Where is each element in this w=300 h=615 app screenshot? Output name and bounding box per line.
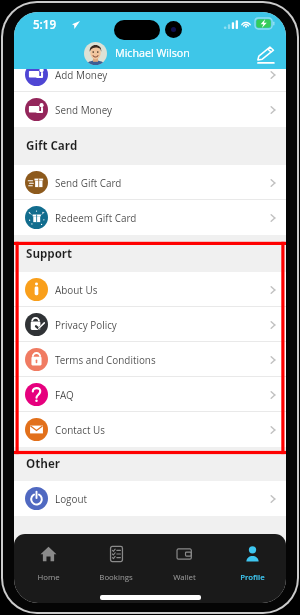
staticText: Send Gift Card [55,176,122,189]
staticText: About Us [55,283,98,296]
staticText: Gift Card [26,138,78,154]
button[interactable]: Home [14,534,82,603]
button[interactable]: FAQ [14,377,286,412]
staticText: Bookings [99,572,133,583]
button[interactable]: Wallet [150,534,218,603]
staticText: Contact Us [55,423,105,436]
staticText: Send Money [55,103,112,116]
button[interactable]: Logout [14,481,286,516]
staticText: Terms and Conditions [55,353,156,366]
staticText: Wallet [173,572,196,583]
staticText: Privacy Policy [55,318,117,331]
button[interactable]: Privacy Policy [14,307,286,342]
button[interactable]: Edit profile [254,42,276,64]
button[interactable]: Profile [218,534,286,603]
button[interactable]: Contact Us [14,412,286,447]
staticText: Add Money [55,69,108,81]
staticText: Profile [240,572,265,583]
button[interactable]: Redeem Gift Card [14,200,286,235]
staticText: Support [26,246,73,262]
staticText: Home [37,572,60,583]
staticText: Logout [55,492,88,505]
staticText: 5:19 [33,17,57,33]
button[interactable]: Bookings [82,534,150,603]
button[interactable]: Michael Wilson [84,41,190,65]
button[interactable]: About Us [14,272,286,307]
button[interactable]: Terms and Conditions [14,342,286,377]
button[interactable]: Send Gift Card [14,165,286,200]
button[interactable]: Send Money [14,92,286,127]
staticText: FAQ [55,388,74,401]
button[interactable]: Add Money [14,69,286,92]
staticText: Redeem Gift Card [55,211,137,224]
staticText: Other [26,456,60,472]
staticText: Michael Wilson [115,46,190,61]
